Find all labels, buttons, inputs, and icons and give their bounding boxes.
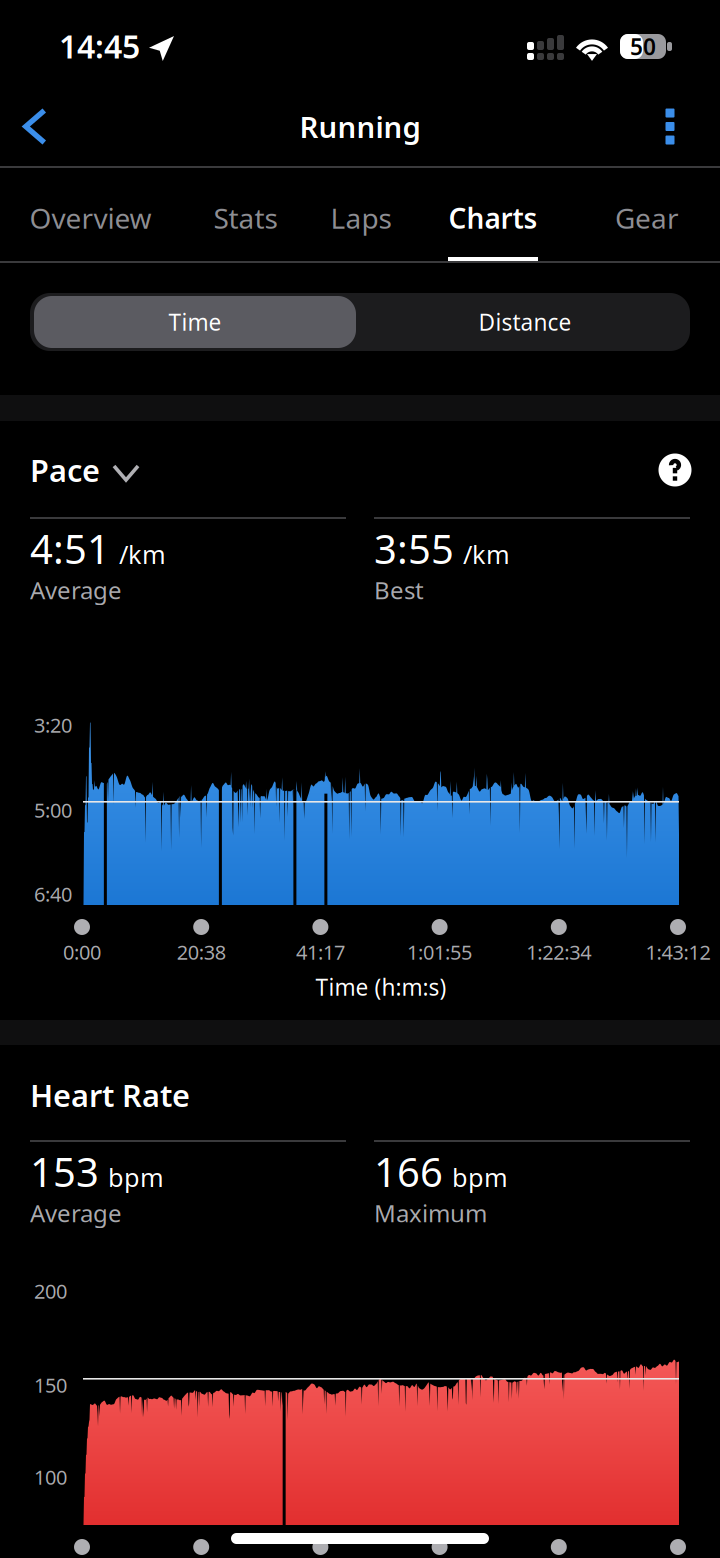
- staticText: 1:01:55: [407, 939, 472, 965]
- staticText: 3:55: [374, 522, 454, 575]
- button[interactable]: More options: [627, 86, 713, 167]
- button[interactable]: Help: [640, 448, 710, 492]
- button[interactable]: Back: [0, 86, 80, 167]
- staticText: 100: [34, 1464, 67, 1490]
- staticText: 3:20: [34, 712, 72, 738]
- staticText: Pace: [30, 450, 100, 490]
- staticText: bpm: [452, 1160, 508, 1194]
- staticText: 50: [630, 31, 656, 61]
- staticText: Overview: [29, 199, 151, 237]
- staticText: 5:00: [34, 797, 72, 823]
- staticText: /km: [119, 537, 166, 571]
- staticText: 1:22:34: [526, 939, 591, 965]
- staticText: Laps: [330, 199, 391, 237]
- button[interactable]: Distance: [364, 296, 686, 348]
- staticText: Time: [168, 307, 221, 337]
- staticText: 0:00: [63, 939, 101, 965]
- staticText: Heart Rate: [30, 1075, 190, 1115]
- staticText: /km: [463, 537, 510, 571]
- staticText: 1:43:12: [645, 939, 710, 965]
- staticText: Best: [374, 574, 424, 606]
- button[interactable]: Overview: [5, 168, 175, 262]
- staticText: 200: [34, 1278, 67, 1304]
- staticText: Gear: [615, 199, 679, 237]
- staticText: Time (h:m:s): [315, 972, 446, 1002]
- button[interactable]: Stats: [183, 168, 307, 262]
- staticText: 150: [34, 1372, 67, 1398]
- staticText: Distance: [478, 307, 571, 337]
- button[interactable]: Time: [34, 296, 356, 348]
- button[interactable]: Charts: [423, 168, 563, 262]
- button[interactable]: Laps: [303, 168, 419, 262]
- staticText: 4:51: [30, 522, 110, 575]
- staticText: 14:45: [59, 25, 140, 67]
- staticText: Running: [299, 107, 420, 146]
- staticText: 166: [374, 1145, 443, 1198]
- staticText: 20:38: [177, 939, 226, 965]
- staticText: 6:40: [34, 881, 72, 907]
- staticText: bpm: [108, 1160, 164, 1194]
- staticText: Stats: [213, 199, 277, 237]
- button[interactable]: Gear: [585, 168, 709, 262]
- staticText: Average: [30, 1197, 122, 1229]
- staticText: Average: [30, 574, 122, 606]
- staticText: 153: [30, 1145, 99, 1198]
- staticText: 41:17: [296, 939, 345, 965]
- staticText: Maximum: [374, 1197, 487, 1229]
- button[interactable]: Pace: [30, 450, 138, 490]
- staticText: Charts: [448, 199, 537, 237]
